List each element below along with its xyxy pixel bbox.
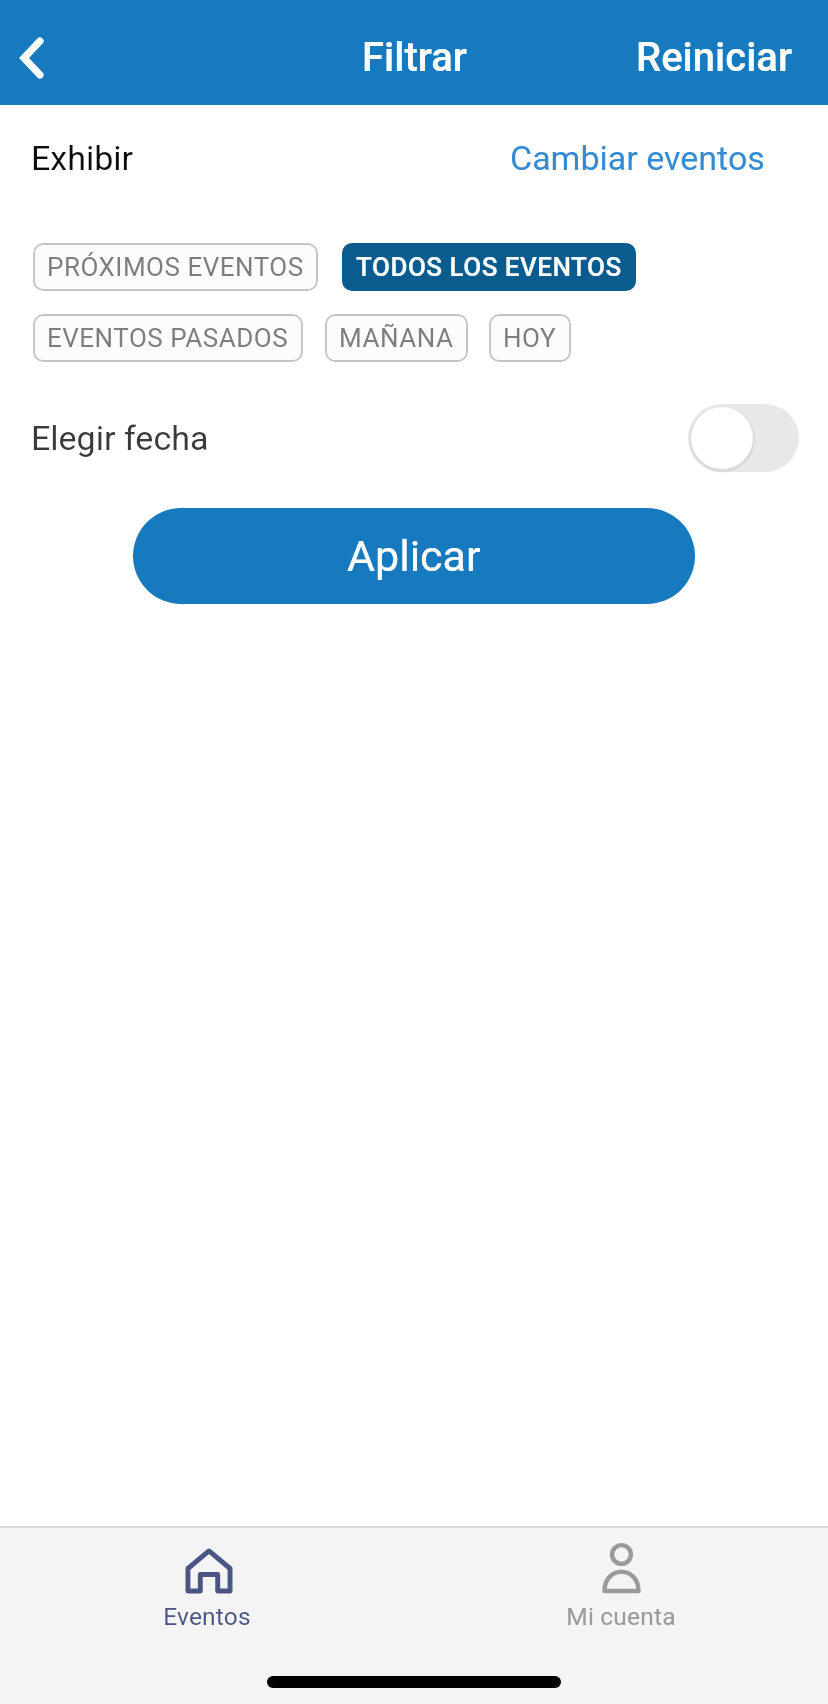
staticText: Exhibir bbox=[31, 138, 134, 178]
button[interactable]: Cambiar eventos bbox=[510, 138, 794, 178]
button[interactable]: TODOS LOS EVENTOS bbox=[342, 243, 636, 291]
staticText: Filtrar bbox=[362, 34, 467, 81]
button[interactable]: Elegir fecha bbox=[688, 404, 799, 472]
button[interactable]: HOY bbox=[489, 314, 571, 362]
button[interactable]: MAÑANA bbox=[325, 314, 468, 362]
staticText: PRÓXIMOS EVENTOS bbox=[47, 252, 304, 282]
staticText: MAÑANA bbox=[339, 323, 454, 353]
staticText: Elegir fecha bbox=[31, 418, 209, 458]
staticText: TODOS LOS EVENTOS bbox=[356, 252, 622, 282]
staticText: Reiniciar bbox=[636, 34, 793, 81]
button[interactable]: Reiniciar bbox=[602, 20, 828, 95]
button[interactable]: Back bbox=[0, 26, 63, 89]
button[interactable]: EVENTOS PASADOS bbox=[33, 314, 303, 362]
staticText: Mi cuenta bbox=[566, 1602, 676, 1631]
staticText: HOY bbox=[503, 323, 557, 353]
button[interactable]: PRÓXIMOS EVENTOS bbox=[33, 243, 318, 291]
staticText: Eventos bbox=[163, 1602, 251, 1631]
staticText: EVENTOS PASADOS bbox=[47, 323, 289, 353]
button[interactable]: Mi cuenta bbox=[414, 1528, 828, 1658]
button[interactable]: Eventos bbox=[0, 1528, 414, 1658]
staticText: Cambiar eventos bbox=[510, 138, 765, 178]
button[interactable]: Aplicar bbox=[133, 508, 695, 604]
staticText: Aplicar bbox=[347, 531, 481, 581]
